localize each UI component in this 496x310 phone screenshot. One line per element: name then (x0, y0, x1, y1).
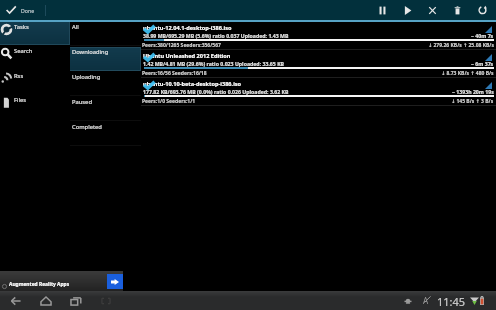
button[interactable]: ubuntu-10.10-beta-desktop-i386.iso (141, 78, 496, 106)
button[interactable]: Delete (445, 0, 470, 20)
staticText: Completed (72, 123, 102, 131)
button[interactable]: Tasks (0, 22, 70, 45)
button[interactable]: Ubuntu Unleashed 2012 Edition (141, 50, 496, 78)
staticText: ↓ 145 B/s ↑ 3 B/s (451, 98, 494, 105)
button[interactable]: Open ad (107, 274, 123, 289)
staticText: Paused (72, 98, 92, 106)
staticText: Peers:380/1265 Seeders:356/567 (142, 42, 221, 49)
button[interactable]: Start (395, 0, 420, 20)
button[interactable]: Search (0, 46, 70, 71)
button[interactable]: Files (0, 95, 70, 120)
staticText: ~ 40m 7s (471, 32, 494, 39)
staticText: Uploading (72, 73, 101, 81)
staticText: All (72, 23, 79, 31)
staticText: ↓ 279.26 KB/s ↑ 25.08 KB/s (428, 42, 494, 49)
button[interactable]: Back (1, 291, 31, 310)
staticText: Augmented Reality Apps (9, 281, 70, 288)
staticText: A (423, 295, 429, 306)
button[interactable]: Uploading (70, 72, 141, 96)
staticText: Done (21, 7, 35, 14)
staticText: 1.42 MB/4.81 MB (29.6%) ratio 0.023 Uplo… (143, 60, 285, 67)
staticText: 177.82 KB/693.76 MB (0.0%) ratio 0.026 U… (143, 88, 289, 95)
staticText: Tasks (14, 23, 29, 31)
button[interactable]: Recent apps (61, 291, 91, 310)
staticText: ubuntu-10.10-beta-desktop-i386.iso (143, 80, 242, 88)
staticText: Ubuntu Unleashed 2012 Edition (143, 52, 231, 60)
button[interactable]: All (70, 22, 141, 46)
staticText: ~ 6m 37s (471, 60, 494, 67)
staticText: Peers:16/56 Seeders:16/18 (142, 70, 207, 77)
button[interactable]: Downloading (70, 47, 141, 71)
button[interactable]: Keyboard (91, 291, 121, 310)
button[interactable]: Status (400, 291, 496, 310)
staticText: Peers:1/0 Seeders:1/1 (142, 98, 196, 105)
staticText: 38.99 MB/695.29 MB (5.6%) ratio 0.037 Up… (143, 32, 289, 39)
button[interactable]: Rss (0, 71, 70, 96)
staticText: ~ 1393h 20m 19s (452, 88, 494, 95)
button[interactable]: Done (6, 0, 35, 20)
staticText: Files (14, 96, 27, 104)
button[interactable]: ubuntu-12.04.1-desktop-i386.iso (141, 22, 496, 50)
button[interactable]: Pause (370, 0, 395, 20)
button[interactable]: Augmented Reality Apps (0, 271, 123, 291)
button[interactable]: Remove (420, 0, 445, 20)
staticText: Rss (14, 72, 24, 80)
button[interactable]: Completed (70, 122, 141, 146)
button[interactable]: Paused (70, 97, 141, 121)
button[interactable]: Refresh (470, 0, 495, 20)
staticText: 11:45 (437, 294, 466, 309)
button[interactable]: Home (31, 291, 61, 310)
staticText: ubuntu-12.04.1-desktop-i386.iso (143, 24, 232, 32)
staticText: Search (14, 47, 33, 55)
staticText: Downloading (72, 48, 109, 56)
staticText: ↓ 8.73 KB/s ↑ 480 B/s (441, 70, 494, 77)
